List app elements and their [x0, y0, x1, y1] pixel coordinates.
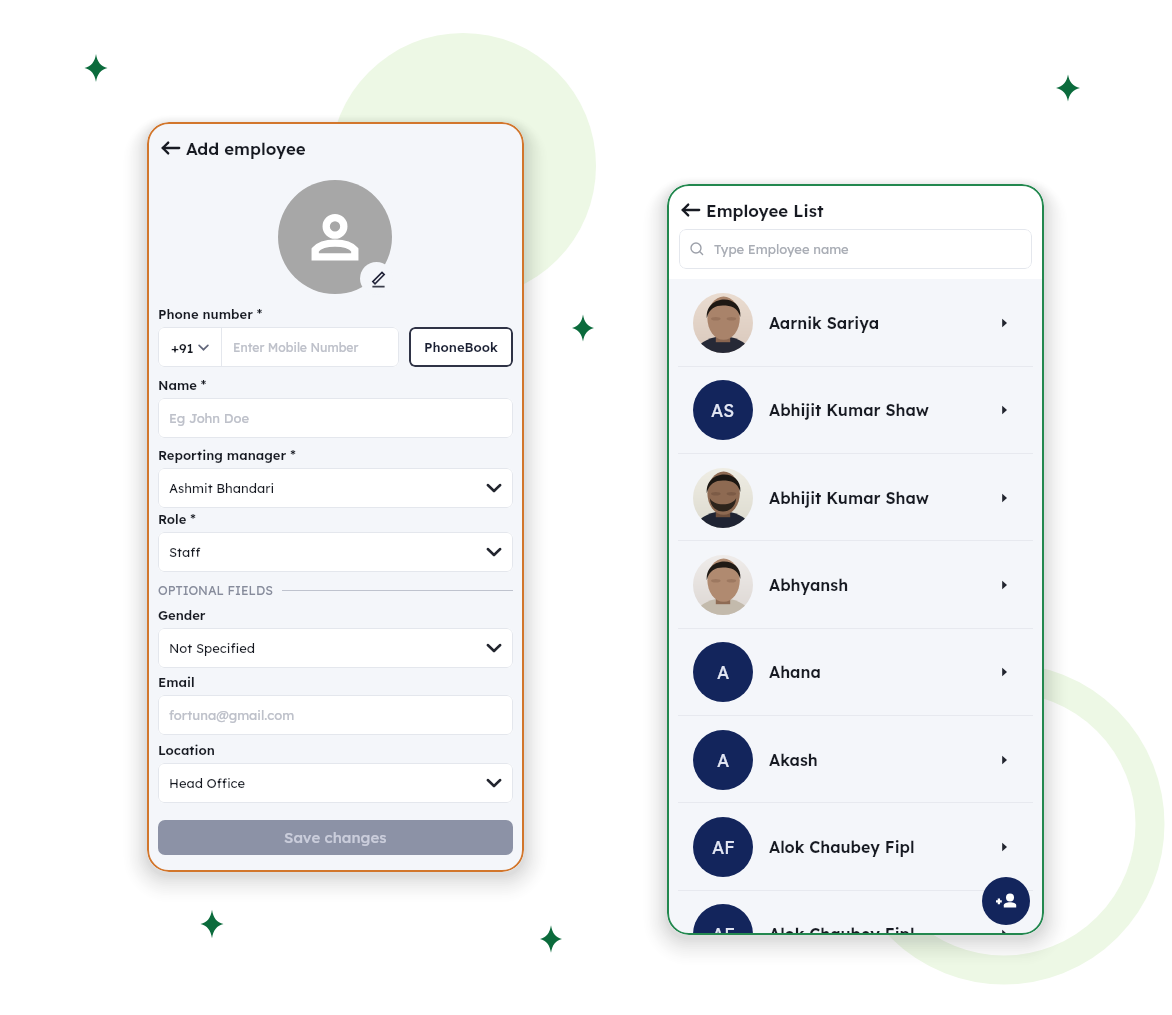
staticText: Not Specified — [169, 640, 256, 656]
staticText: Enter Mobile Number — [233, 340, 359, 355]
staticText: Ashmit Bhandari — [169, 480, 275, 496]
staticText: Phone number * — [158, 306, 263, 322]
staticText: A — [717, 749, 730, 771]
button[interactable]: Back — [158, 135, 184, 161]
staticText: +91 — [171, 339, 194, 356]
staticText: Location — [158, 742, 215, 758]
button[interactable]: PhoneBook — [409, 327, 513, 367]
button[interactable]: Aarnik Sariya — [667, 279, 1044, 366]
staticText: Abhyansh — [769, 575, 998, 595]
button[interactable]: Eg John Doe — [158, 398, 513, 438]
button[interactable]: Abhijit Kumar Shaw — [667, 454, 1044, 541]
button[interactable]: AF — [667, 803, 1044, 890]
staticText: Reporting manager * — [158, 447, 296, 463]
button[interactable]: Staff — [158, 532, 513, 572]
staticText: Save changes — [284, 828, 387, 847]
button[interactable]: Abhyansh — [667, 541, 1044, 628]
staticText: Name * — [158, 377, 207, 393]
staticText: Alok Chaubey Fipl — [769, 924, 998, 935]
button[interactable]: Type Employee name — [679, 229, 1032, 269]
staticText: Aarnik Sariya — [769, 313, 998, 333]
staticText: Staff — [169, 544, 201, 560]
button[interactable]: AF — [667, 890, 1044, 935]
staticText: Role * — [158, 511, 196, 527]
staticText: AF — [712, 923, 735, 935]
button[interactable]: +91 — [158, 327, 221, 367]
staticText: OPTIONAL FIELDS — [158, 583, 273, 598]
button[interactable]: Ashmit Bhandari — [158, 468, 513, 508]
staticText: AF — [712, 836, 735, 858]
staticText: Ahana — [769, 662, 998, 682]
staticText: Alok Chaubey Fipl — [769, 837, 998, 857]
button[interactable]: Not Specified — [158, 628, 513, 668]
staticText: Add employee — [186, 138, 306, 159]
staticText: Type Employee name — [714, 241, 849, 257]
staticText: Employee List — [706, 200, 824, 221]
staticText: Email — [158, 674, 195, 690]
staticText: Head Office — [169, 775, 246, 791]
staticText: Eg John Doe — [169, 410, 250, 426]
staticText: Akash — [769, 750, 998, 770]
staticText: Abhijit Kumar Shaw — [769, 488, 998, 508]
staticText: Gender — [158, 607, 206, 623]
button[interactable]: fortuna@gmail.com — [158, 695, 513, 735]
staticText: AS — [711, 399, 735, 421]
button[interactable]: Back — [678, 197, 704, 223]
button[interactable]: Head Office — [158, 763, 513, 803]
button[interactable]: Edit photo — [360, 262, 393, 295]
button[interactable]: Enter Mobile Number — [222, 327, 399, 367]
button[interactable]: AS — [667, 366, 1044, 453]
staticText: PhoneBook — [424, 339, 498, 355]
button[interactable]: A — [667, 716, 1044, 803]
button[interactable]: Save changes — [158, 820, 513, 855]
button[interactable]: Add employee — [982, 877, 1030, 925]
staticText: Abhijit Kumar Shaw — [769, 400, 998, 420]
staticText: A — [717, 661, 730, 683]
staticText: fortuna@gmail.com — [169, 707, 295, 723]
button[interactable]: A — [667, 628, 1044, 715]
